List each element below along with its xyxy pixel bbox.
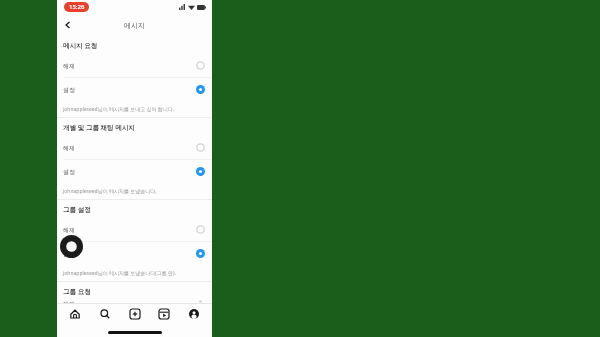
button[interactable]: 해제: [57, 54, 212, 77]
staticText: 그룹 설정: [63, 205, 91, 214]
staticText: 그룹 요청: [63, 287, 91, 296]
button[interactable]: 설정: [57, 160, 212, 183]
button[interactable]: Home: [63, 304, 87, 324]
staticText: 해제: [63, 62, 75, 70]
staticText: 해제: [63, 300, 75, 303]
button[interactable]: Reels: [152, 304, 176, 324]
staticText: 개별 및 그룹 채팅 메시지: [63, 123, 135, 132]
button[interactable]: Profile: [182, 304, 206, 324]
staticText: 설정: [63, 168, 75, 176]
button[interactable]: Create: [123, 304, 147, 324]
button[interactable]: 설정: [57, 78, 212, 101]
button[interactable]: Search: [93, 304, 117, 324]
staticText: johnappleseed님이 메시지를 보내고 싶어 합니다.: [63, 106, 175, 113]
staticText: 해제: [63, 144, 75, 152]
button[interactable]: 해제: [57, 300, 212, 303]
button[interactable]: 해제: [57, 136, 212, 159]
staticText: johnappleseed님이 메시지를 보냈습니다(그룹 만).: [63, 270, 176, 277]
button[interactable]: Back: [60, 17, 76, 33]
staticText: 15:26: [69, 3, 85, 11]
staticText: johnappleseed님이 메시지를 보냈습니다.: [63, 188, 157, 195]
button[interactable]: 설정: [57, 242, 212, 265]
staticText: 메시지: [124, 21, 145, 30]
staticText: 설정: [63, 250, 75, 258]
staticText: 설정: [63, 86, 75, 94]
button[interactable]: 해제: [57, 218, 212, 241]
staticText: 해제: [63, 226, 75, 234]
staticText: 메시지 요청: [63, 41, 98, 50]
